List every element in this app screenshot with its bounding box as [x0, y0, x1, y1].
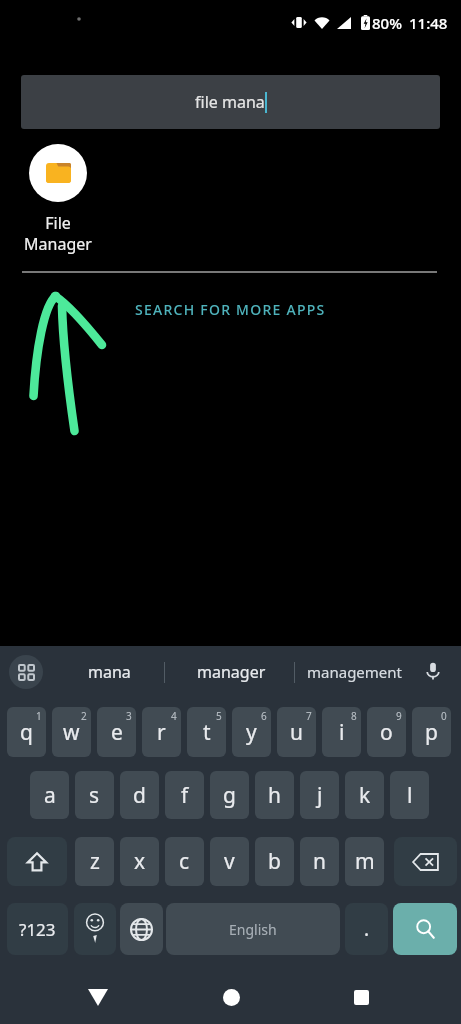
staticText: 7 [306, 709, 312, 723]
staticText: 4 [171, 709, 177, 723]
button[interactable]: h [255, 771, 294, 819]
staticText: d [133, 781, 146, 810]
staticText: 0 [441, 709, 447, 723]
button[interactable]: m [345, 837, 384, 886]
button[interactable]: Change language [120, 903, 163, 955]
staticText: q [20, 718, 33, 747]
staticText: m [355, 847, 375, 876]
button[interactable]: c [165, 837, 204, 886]
button[interactable]: . [345, 903, 388, 955]
staticText: p [425, 718, 438, 747]
staticText: 3 [126, 709, 132, 723]
button[interactable]: Home [211, 975, 251, 1019]
button[interactable]: File Manager [17, 144, 99, 255]
button[interactable]: All apps [9, 655, 43, 689]
button[interactable]: ?123 [7, 903, 68, 955]
button[interactable]: SEARCH FOR MORE APPS [128, 295, 333, 324]
button[interactable]: Voice input [421, 659, 445, 683]
button[interactable]: Shift [7, 837, 67, 886]
button[interactable]: j [300, 771, 339, 819]
button[interactable]: k [345, 771, 384, 819]
staticText: a [44, 781, 56, 810]
staticText: 11:48 [409, 13, 448, 33]
button[interactable]: o [367, 707, 406, 757]
button[interactable]: q [7, 707, 46, 757]
button[interactable]: v [210, 837, 249, 886]
staticText: h [268, 781, 281, 810]
staticText: j [317, 781, 323, 810]
button[interactable]: e [97, 707, 136, 757]
staticText: 6 [261, 709, 267, 723]
staticText: w [63, 718, 80, 747]
staticText: manager [197, 661, 266, 683]
button[interactable]: i [322, 707, 361, 757]
staticText: v [224, 847, 235, 876]
button[interactable]: management [298, 646, 410, 698]
staticText: s [89, 781, 100, 810]
button[interactable]: Emoji [74, 903, 116, 955]
button[interactable]: manager [174, 646, 289, 698]
staticText: x [134, 847, 146, 876]
button[interactable]: y [232, 707, 271, 757]
button[interactable]: r [142, 707, 181, 757]
button[interactable]: p [412, 707, 451, 757]
staticText: 2 [81, 709, 87, 723]
button[interactable]: Backspace [394, 837, 457, 886]
button[interactable]: w [52, 707, 91, 757]
button[interactable]: Back [78, 975, 118, 1019]
staticText: management [307, 662, 402, 682]
staticText: t [203, 718, 211, 747]
staticText: SEARCH FOR MORE APPS [135, 300, 326, 319]
staticText: g [223, 781, 236, 810]
button[interactable]: l [390, 771, 429, 819]
button[interactable]: n [300, 837, 339, 886]
staticText: u [290, 718, 303, 747]
button[interactable]: x [120, 837, 159, 886]
staticText: 1 [36, 709, 42, 723]
button[interactable]: Search [393, 903, 457, 955]
staticText: . [364, 916, 370, 942]
button[interactable]: file mana [21, 75, 440, 129]
staticText: c [179, 847, 190, 876]
staticText: i [339, 718, 345, 747]
staticText: k [359, 781, 371, 810]
staticText: z [90, 847, 100, 876]
button[interactable]: English [166, 903, 340, 955]
button[interactable]: s [75, 771, 114, 819]
staticText: 8 [351, 709, 357, 723]
staticText: f [181, 781, 189, 810]
button[interactable]: g [210, 771, 249, 819]
staticText: 80% [372, 13, 402, 33]
staticText: file mana [195, 91, 265, 113]
staticText: o [380, 718, 393, 747]
button[interactable]: f [165, 771, 204, 819]
staticText: y [246, 718, 257, 747]
button[interactable]: b [255, 837, 294, 886]
staticText: 9 [396, 709, 402, 723]
button[interactable]: u [277, 707, 316, 757]
staticText: mana [88, 661, 131, 683]
staticText: l [407, 781, 413, 810]
button[interactable]: d [120, 771, 159, 819]
staticText: File Manager [17, 212, 99, 255]
staticText: English [229, 920, 277, 939]
staticText: e [111, 718, 123, 747]
button[interactable]: a [30, 771, 69, 819]
staticText: n [313, 847, 326, 876]
button[interactable]: z [75, 837, 114, 886]
button[interactable]: Recent apps [341, 975, 381, 1019]
button[interactable]: mana [56, 646, 163, 698]
button[interactable]: t [187, 707, 226, 757]
staticText: b [268, 847, 281, 876]
staticText: 5 [216, 709, 222, 723]
staticText: ?123 [19, 918, 56, 941]
staticText: r [157, 718, 166, 747]
